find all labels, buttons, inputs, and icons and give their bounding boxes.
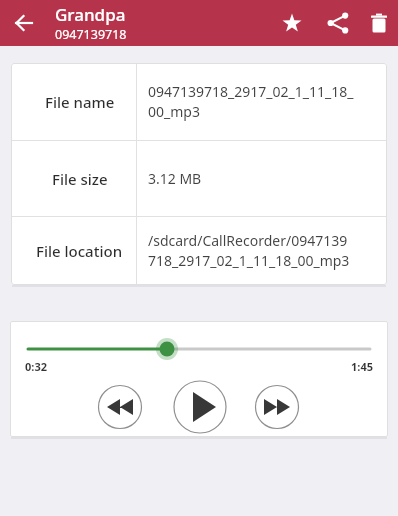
staticText: File size [52,169,108,189]
button[interactable] [360,0,398,46]
staticText: 1:45 [351,359,373,374]
staticText: File name [45,92,115,112]
staticText: 0:32 [25,359,47,374]
button[interactable] [0,0,48,46]
staticText: File location [36,241,123,261]
button[interactable] [98,385,142,429]
staticText: 0947139718 [55,26,127,43]
button[interactable] [173,380,227,434]
button[interactable] [255,385,299,429]
staticText: 3.12 MB [148,169,202,188]
button[interactable]: File size [23,141,136,216]
button[interactable] [10,321,388,359]
button[interactable]: File location [23,217,136,284]
button[interactable] [270,0,314,46]
button[interactable]: File name [23,63,136,140]
button[interactable] [316,0,360,46]
staticText: /sdcard/CallRecorder/0947139 718_2917_02… [148,231,350,271]
staticText: 0947139718_2917_02_1_11_18_ 00_mp3 [148,82,354,122]
staticText: Grandpa [55,3,126,26]
